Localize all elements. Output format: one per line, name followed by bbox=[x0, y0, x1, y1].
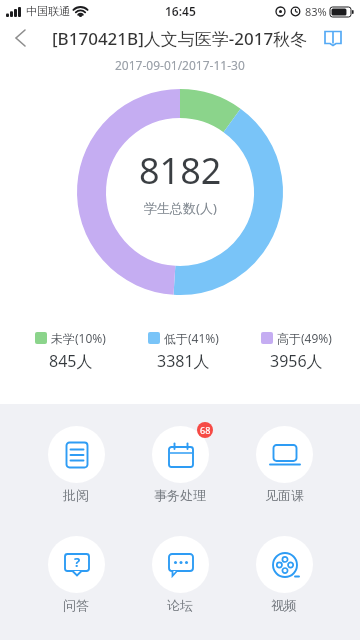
button[interactable]: 高于(49%) bbox=[240, 330, 353, 372]
button[interactable]: 低于(41%) bbox=[127, 330, 240, 372]
staticText: 3956人 bbox=[270, 350, 323, 372]
staticText: 83% bbox=[305, 4, 327, 19]
button[interactable]: 68 bbox=[128, 426, 232, 503]
staticText: ? bbox=[74, 553, 81, 571]
staticText: 3381人 bbox=[157, 350, 210, 372]
staticText: 论坛 bbox=[167, 597, 193, 613]
staticText: 低于(41%) bbox=[164, 330, 219, 346]
staticText: 8182 bbox=[139, 146, 222, 195]
staticText: 16:45 bbox=[165, 3, 196, 19]
button[interactable]: ? bbox=[24, 536, 128, 613]
staticText: 视频 bbox=[271, 597, 297, 613]
staticText: 未学(10%) bbox=[51, 330, 106, 346]
button[interactable] bbox=[8, 26, 32, 50]
staticText: 2017-09-01/2017-11-30 bbox=[115, 57, 245, 73]
staticText: 见面课 bbox=[265, 487, 304, 503]
button[interactable]: 未学(10%) bbox=[14, 330, 127, 372]
staticText: [B170421B]人文与医学-2017秋冬 bbox=[52, 27, 308, 50]
staticText: 高于(49%) bbox=[277, 330, 332, 346]
staticText: 事务处理 bbox=[154, 487, 206, 503]
button[interactable]: 批阅 bbox=[24, 426, 128, 503]
button[interactable]: 视频 bbox=[232, 536, 336, 613]
staticText: 中国联通 bbox=[26, 4, 70, 18]
staticText: 845人 bbox=[49, 350, 93, 372]
staticText: 问答 bbox=[63, 597, 89, 613]
staticText: 学生总数(人) bbox=[144, 199, 217, 217]
staticText: 批阅 bbox=[63, 487, 89, 503]
button[interactable]: 论坛 bbox=[128, 536, 232, 613]
button[interactable] bbox=[320, 25, 346, 51]
staticText: 68 bbox=[200, 424, 211, 436]
button[interactable]: 见面课 bbox=[232, 426, 336, 503]
